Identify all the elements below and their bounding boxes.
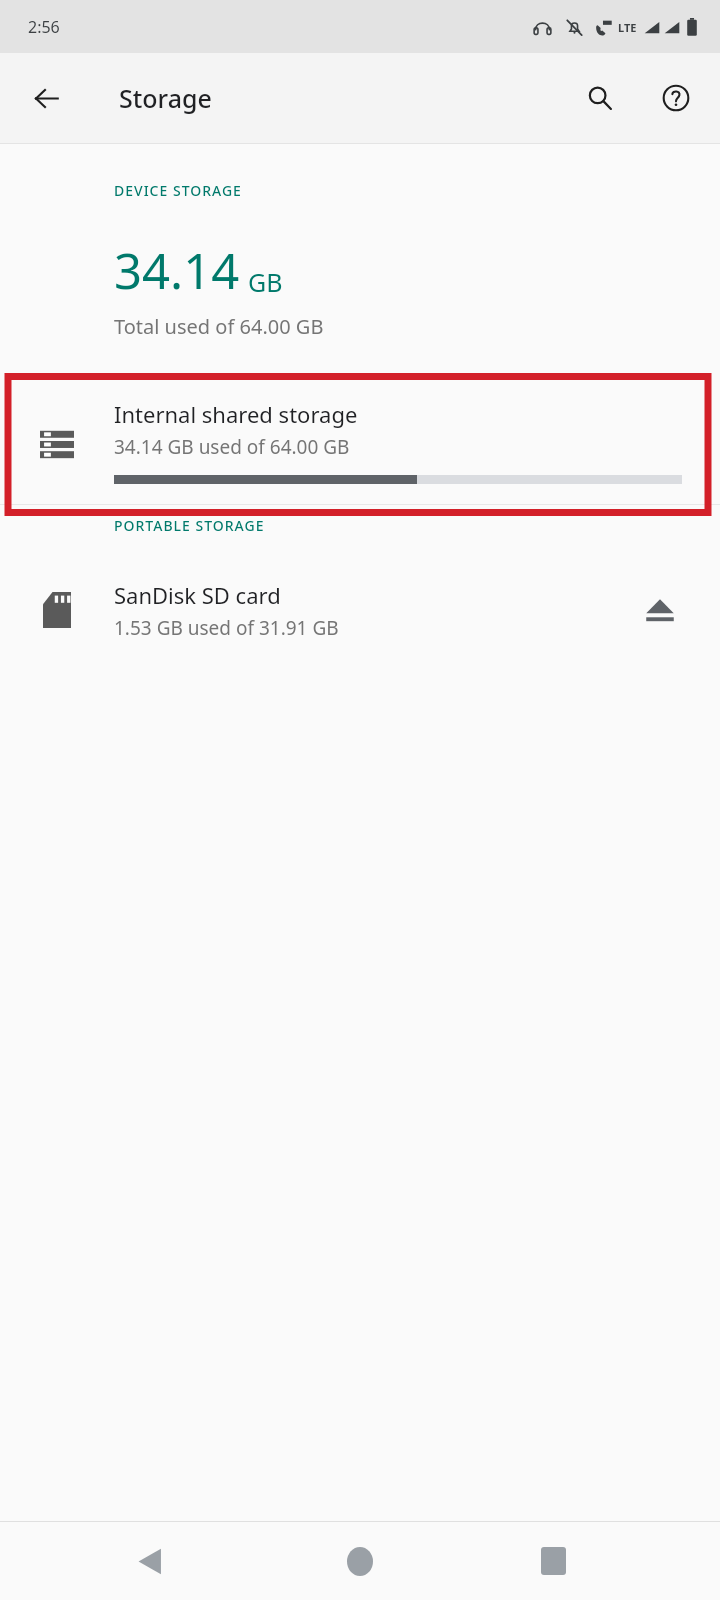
staticText: DEVICE STORAGE [114, 181, 242, 200]
button[interactable]: Search [576, 74, 624, 122]
staticText: Internal shared storage [114, 399, 358, 429]
button[interactable]: Home [320, 1522, 400, 1600]
button[interactable]: Back [110, 1522, 190, 1600]
staticText: SanDisk SD card [114, 580, 281, 610]
staticText: GB [248, 265, 283, 299]
staticText: 2:56 [28, 16, 60, 38]
button[interactable]: Eject SD card [636, 586, 684, 634]
staticText: LTE [618, 20, 637, 35]
staticText: 34.14 [114, 237, 240, 304]
staticText: Total used of 64.00 GB [114, 313, 324, 340]
button[interactable]: Help [652, 74, 700, 122]
staticText: PORTABLE STORAGE [114, 516, 265, 535]
staticText: 1.53 GB used of 31.91 GB [114, 615, 339, 641]
button[interactable]: Recent apps [513, 1522, 593, 1600]
button[interactable]: Internal shared storage [0, 378, 720, 504]
button[interactable]: SanDisk SD card [0, 565, 720, 655]
staticText: 34.14 GB used of 64.00 GB [114, 434, 350, 460]
button[interactable]: Back [22, 74, 70, 122]
staticText: Storage [119, 81, 212, 115]
